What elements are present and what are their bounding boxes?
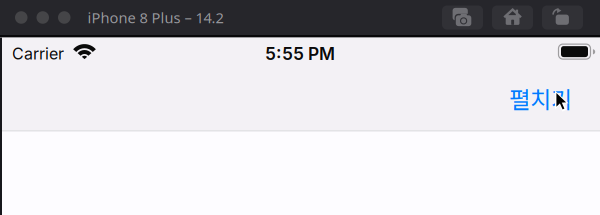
button[interactable]: Home bbox=[492, 5, 533, 29]
staticText: 5:55 PM bbox=[265, 43, 335, 64]
button[interactable]: Screenshot bbox=[442, 5, 483, 29]
button[interactable]: Minimize bbox=[36, 11, 49, 24]
button[interactable]: 펼치기 bbox=[503, 73, 578, 123]
staticText: Carrier bbox=[12, 44, 64, 63]
staticText: iPhone 8 Plus – 14.2 bbox=[87, 8, 223, 27]
button[interactable]: Close bbox=[15, 11, 27, 24]
button[interactable]: Zoom bbox=[58, 11, 70, 24]
staticText: 펼치기 bbox=[509, 81, 572, 115]
button[interactable]: Rotate bbox=[542, 5, 583, 29]
